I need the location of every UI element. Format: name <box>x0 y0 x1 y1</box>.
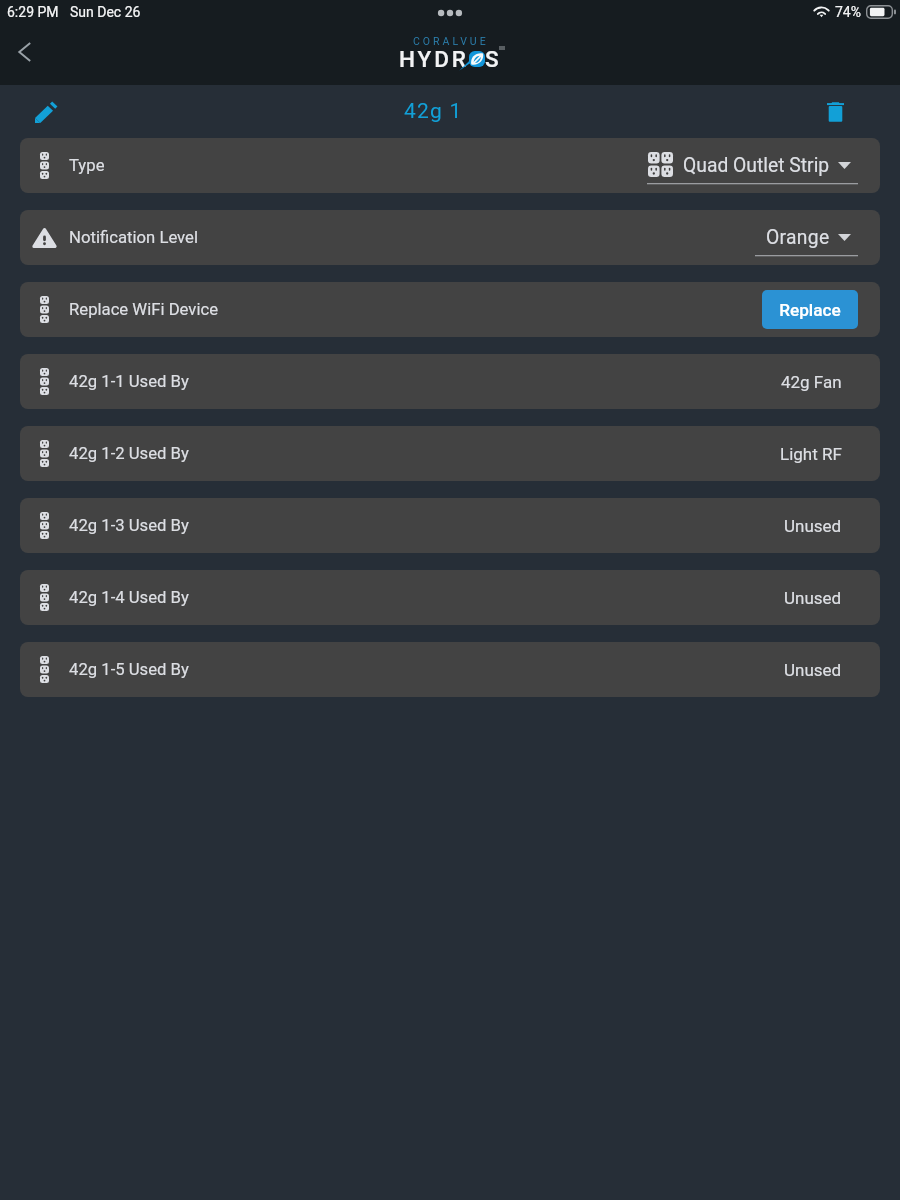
staticText: Quad Outlet Strip <box>683 154 830 177</box>
staticText: 42g 1-1 Used By <box>69 372 189 392</box>
staticText: Unused <box>784 588 842 608</box>
button[interactable]: Quad Outlet Strip <box>647 138 858 193</box>
staticText: Sun Dec 26 <box>70 4 141 20</box>
staticText: HYDR <box>399 46 469 72</box>
staticText: 42g 1-5 Used By <box>69 660 189 680</box>
button[interactable]: Back <box>1 28 49 76</box>
staticText: 42g 1-4 Used By <box>69 588 189 608</box>
staticText: Unused <box>784 516 842 536</box>
staticText: 42g Fan <box>781 372 842 392</box>
staticText: Type <box>69 156 105 176</box>
button[interactable]: 42g 1-4 Used By <box>20 570 880 625</box>
staticText: 42g 1-3 Used By <box>69 516 189 536</box>
button[interactable]: Delete device <box>813 90 857 134</box>
button[interactable]: Replace WiFi Device <box>20 282 880 337</box>
staticText: Notification Level <box>69 228 199 248</box>
staticText: 42g 1 <box>404 99 463 124</box>
staticText: Replace <box>779 300 841 320</box>
staticText: 42g 1-2 Used By <box>69 444 189 464</box>
staticText: Orange <box>766 226 830 249</box>
button[interactable]: Notification Level <box>20 210 880 265</box>
button[interactable]: Replace <box>762 290 858 329</box>
staticText: 6:29 PM <box>7 4 59 20</box>
staticText: Replace WiFi Device <box>69 300 219 320</box>
staticText: Unused <box>784 660 842 680</box>
staticText: 74% <box>835 4 861 20</box>
staticText: CORALVUE <box>413 35 489 47</box>
staticText: Light RF <box>780 444 842 464</box>
button[interactable]: 42g 1-3 Used By <box>20 498 880 553</box>
button[interactable]: Rename device <box>22 88 70 136</box>
button[interactable]: Orange <box>755 210 858 265</box>
staticText: S <box>485 46 502 72</box>
button[interactable]: 42g 1-5 Used By <box>20 642 880 697</box>
button[interactable]: Type <box>20 138 880 193</box>
button[interactable]: 42g 1-1 Used By <box>20 354 880 409</box>
button[interactable]: 42g 1-2 Used By <box>20 426 880 481</box>
